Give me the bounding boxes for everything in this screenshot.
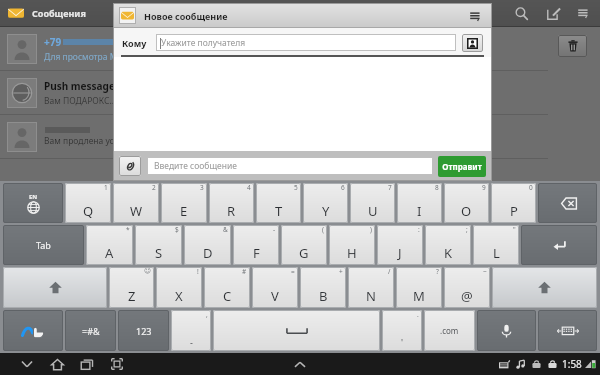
staticText: B — [319, 287, 328, 305]
button[interactable]: V — [252, 267, 298, 308]
button[interactable]: X — [156, 267, 202, 308]
button[interactable]: Delete — [558, 35, 587, 57]
button[interactable]: Back — [12, 353, 42, 375]
button[interactable]: Укажите получателя — [156, 34, 456, 51]
button[interactable]: ' — [382, 310, 422, 351]
button[interactable]: M — [396, 267, 442, 308]
staticText: Сообщения — [32, 7, 86, 19]
button[interactable]: .com — [424, 310, 475, 351]
button[interactable]: U — [350, 183, 395, 223]
staticText: Для просмотра MMS — [44, 51, 130, 63]
button[interactable]: space — [213, 310, 380, 351]
staticText: 3 — [200, 183, 204, 192]
button[interactable]: shift — [3, 267, 107, 308]
button[interactable]: More options — [570, 0, 596, 26]
staticText: O — [461, 202, 472, 220]
staticText: @ — [461, 287, 473, 305]
button[interactable]: D — [184, 225, 231, 265]
staticText: 8 — [435, 183, 439, 192]
staticText: 4 — [247, 183, 251, 192]
staticText: K — [444, 244, 453, 262]
staticText: ! — [197, 267, 199, 276]
staticText: Отправит — [442, 161, 482, 172]
button[interactable]: kbd — [538, 310, 597, 351]
button[interactable]: Отправит — [438, 156, 486, 177]
button[interactable]: Q — [65, 183, 111, 223]
staticText: N — [366, 287, 376, 305]
button[interactable]: W — [113, 183, 159, 223]
button[interactable]: T — [256, 183, 301, 223]
button[interactable]: New message — [536, 0, 570, 26]
button[interactable]: Tab — [3, 225, 84, 265]
button[interactable]: Z — [109, 267, 154, 308]
button[interactable]: P — [491, 183, 536, 223]
staticText: . — [417, 310, 419, 319]
button[interactable]: Push message — [0, 71, 548, 114]
button[interactable]: I — [397, 183, 442, 223]
button[interactable]: +79 — [0, 27, 548, 70]
button[interactable]: @ — [444, 267, 490, 308]
staticText: ) — [370, 225, 372, 234]
staticText: 7 — [388, 183, 392, 192]
staticText: Вам продлена ус.. — [44, 135, 119, 147]
button[interactable]: Screenshot — [102, 353, 132, 375]
button[interactable]: - — [171, 310, 211, 351]
button[interactable]: N — [348, 267, 394, 308]
staticText: Push message — [44, 79, 115, 93]
button[interactable]: Show notifications — [287, 353, 313, 375]
button[interactable]: bksp — [538, 183, 597, 223]
staticText: .com — [440, 325, 459, 336]
staticText: 9 — [482, 183, 486, 192]
button[interactable]: enter — [521, 225, 597, 265]
staticText: 1 — [104, 183, 108, 192]
button[interactable]: Attach — [119, 156, 141, 176]
button[interactable]: Home — [42, 353, 72, 375]
button[interactable]: E — [161, 183, 207, 223]
button[interactable]: Recents — [72, 353, 102, 375]
button[interactable]: Y — [303, 183, 348, 223]
staticText: J — [398, 244, 402, 262]
staticText: & — [223, 225, 228, 234]
button[interactable]: Search — [506, 0, 536, 26]
button[interactable]: H — [329, 225, 375, 265]
staticText: +79 — [44, 35, 62, 49]
button[interactable]: hand — [3, 310, 63, 351]
button[interactable]: F — [233, 225, 279, 265]
button[interactable]: shift — [492, 267, 597, 308]
staticText: Введите сообщение — [154, 160, 237, 172]
button[interactable]: O — [444, 183, 489, 223]
button[interactable]: R — [209, 183, 254, 223]
button[interactable]: globe — [3, 183, 63, 223]
button[interactable]: More options — [464, 3, 486, 28]
button[interactable]: G — [281, 225, 327, 265]
staticText: ; — [466, 225, 468, 234]
button[interactable]: S — [135, 225, 182, 265]
button[interactable]: L — [473, 225, 519, 265]
staticText: G — [299, 244, 309, 262]
staticText: S — [155, 244, 163, 262]
staticText: F — [253, 244, 260, 262]
button[interactable]: =#& — [65, 310, 116, 351]
staticText: A — [105, 244, 114, 262]
button[interactable]: A — [86, 225, 133, 265]
staticText: 0 — [529, 183, 533, 192]
staticText: Tab — [36, 239, 51, 251]
staticText: R — [227, 202, 236, 220]
button[interactable]: C — [204, 267, 250, 308]
staticText: / — [388, 267, 391, 276]
staticText: V — [271, 287, 279, 305]
button[interactable]: mic — [477, 310, 536, 351]
button[interactable]: B — [300, 267, 346, 308]
staticText: M — [413, 287, 425, 305]
button[interactable]: 123 — [118, 310, 169, 351]
button[interactable]: Select contact — [462, 34, 483, 52]
staticText: + — [339, 267, 343, 276]
staticText: ' — [401, 336, 404, 348]
button[interactable]: Введите сообщение — [147, 157, 433, 175]
staticText: Z — [128, 287, 136, 305]
button[interactable]: K — [425, 225, 471, 265]
button[interactable]: Вам продлена ус.. — [0, 115, 548, 158]
staticText: Укажите получателя — [161, 37, 246, 49]
button[interactable]: J — [377, 225, 423, 265]
staticText: $ — [175, 225, 179, 234]
